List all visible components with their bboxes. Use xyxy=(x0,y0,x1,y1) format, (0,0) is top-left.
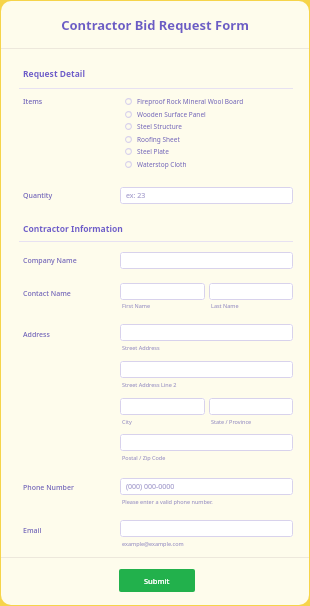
button[interactable] xyxy=(120,361,293,378)
button[interactable] xyxy=(120,252,293,269)
staticText: Street Address xyxy=(122,344,160,351)
staticText: ex: 23 xyxy=(126,191,146,201)
staticText: Email xyxy=(23,526,42,536)
button[interactable]: (000) 000-0000 xyxy=(120,478,293,495)
button[interactable]: Roofing Sheet xyxy=(125,133,275,145)
staticText: Submit xyxy=(144,576,170,586)
staticText: Fireproof Rock Mineral Wool Board xyxy=(137,97,244,106)
button[interactable] xyxy=(209,283,293,300)
staticText: (000) 000-0000 xyxy=(126,482,175,492)
staticText: Contractor Information xyxy=(23,223,123,235)
button[interactable]: Steel Structure xyxy=(125,120,275,132)
staticText: Waterstop Cloth xyxy=(137,160,187,169)
staticText: Wooden Surface Panel xyxy=(137,110,206,119)
button[interactable] xyxy=(120,434,293,451)
button[interactable] xyxy=(120,324,293,341)
staticText: Street Address Line 2 xyxy=(122,381,177,388)
staticText: First Name xyxy=(122,302,151,309)
button[interactable]: Waterstop Cloth xyxy=(125,158,275,170)
button[interactable]: ex: 23 xyxy=(120,187,293,204)
button[interactable]: Submit xyxy=(119,569,195,592)
button[interactable] xyxy=(209,398,293,415)
button[interactable]: Steel Plate xyxy=(125,145,275,157)
staticText: Last Name xyxy=(211,302,239,309)
staticText: Items xyxy=(23,97,43,107)
staticText: Postal / Zip Code xyxy=(122,454,166,461)
staticText: State / Province xyxy=(211,418,252,425)
staticText: Roofing Sheet xyxy=(137,135,180,144)
button[interactable] xyxy=(120,520,293,537)
staticText: City xyxy=(122,418,132,425)
staticText: Company Name xyxy=(23,256,77,266)
staticText: Phone Number xyxy=(23,483,74,493)
staticText: Steel Plate xyxy=(137,147,169,156)
button[interactable] xyxy=(120,283,205,300)
staticText: Steel Structure xyxy=(137,122,182,131)
staticText: Address xyxy=(23,330,50,340)
staticText: example@example.com xyxy=(122,540,184,547)
staticText: Quantity xyxy=(23,191,53,201)
staticText: Contractor Bid Request Form xyxy=(61,16,249,34)
staticText: Contact Name xyxy=(23,289,71,299)
staticText: Please enter a valid phone number. xyxy=(122,498,213,505)
staticText: Request Detail xyxy=(23,68,85,80)
button[interactable] xyxy=(120,398,205,415)
button[interactable]: Wooden Surface Panel xyxy=(125,108,275,120)
button[interactable]: Fireproof Rock Mineral Wool Board xyxy=(125,95,275,107)
